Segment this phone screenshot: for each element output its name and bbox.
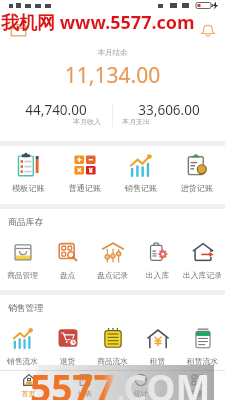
button[interactable]: 租赁 — [135, 327, 180, 366]
button[interactable]: 首页 — [0, 373, 57, 400]
staticText: 5577.COM — [30, 362, 211, 400]
staticText: 首页 — [0, 389, 57, 398]
button[interactable]: 进货记账 — [169, 153, 225, 204]
button[interactable]: 销售记账 — [113, 153, 169, 204]
staticText: 盘点记录 — [90, 270, 135, 280]
staticText: 盘点 — [45, 270, 90, 280]
staticText: 报表 — [57, 389, 113, 398]
staticText: 销售记账 — [113, 183, 169, 193]
staticText: 本月收入 — [0, 117, 101, 126]
staticText: 我机网 www.5577.com — [1, 10, 195, 35]
staticText: 租赁流水 — [180, 356, 225, 366]
staticText: 出入库 — [135, 270, 180, 280]
staticText: 本月结余 — [0, 48, 225, 57]
button[interactable]: 统计 — [113, 373, 169, 400]
staticText: 本月支出 — [122, 117, 150, 126]
button[interactable]: Notifications — [200, 22, 216, 38]
staticText: 33,606.00 — [113, 101, 225, 119]
button[interactable]: 出入库记录 — [180, 241, 225, 280]
button[interactable]: Store — [9, 21, 28, 40]
button[interactable]: 盘点记录 — [90, 241, 135, 280]
staticText: 更多 — [169, 389, 225, 398]
button[interactable]: 商品流水 — [90, 327, 135, 366]
staticText: 普通记账 — [57, 183, 113, 193]
button[interactable]: 盘点 — [45, 241, 90, 280]
staticText: 退货 — [45, 356, 90, 366]
staticText: 11,134.00 — [0, 61, 225, 90]
button[interactable]: 租赁流水 — [180, 327, 225, 366]
staticText: 商品库存 — [8, 217, 44, 228]
button[interactable]: 模板记账 — [0, 153, 57, 204]
button[interactable]: 销售流水 — [0, 327, 45, 366]
button[interactable]: 出入库 — [135, 241, 180, 280]
button[interactable]: 更多 — [169, 373, 225, 400]
staticText: 租赁 — [135, 356, 180, 366]
button[interactable]: 商品管理 — [0, 241, 45, 280]
staticText: 出入库记录 — [180, 270, 225, 280]
staticText: 44,740.00 — [0, 101, 112, 119]
staticText: 销售管理 — [8, 303, 44, 314]
button[interactable]: 普通记账 — [57, 153, 113, 204]
staticText: 商品管理 — [0, 270, 45, 280]
staticText: 进货记账 — [169, 183, 225, 193]
staticText: 统计 — [113, 389, 169, 398]
staticText: 模板记账 — [0, 183, 57, 193]
staticText: 销售流水 — [0, 356, 45, 366]
button[interactable]: 报表 — [57, 373, 113, 400]
button[interactable]: 退货 — [45, 327, 90, 366]
staticText: 商品流水 — [90, 356, 135, 366]
